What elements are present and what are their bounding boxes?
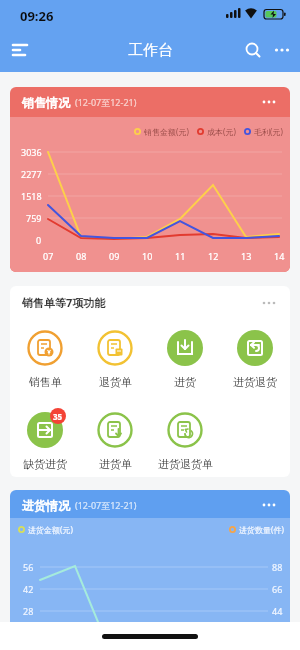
- button[interactable]: 进货: [150, 329, 220, 389]
- button[interactable]: 进货退货: [220, 329, 290, 389]
- staticText: 08: [76, 250, 87, 262]
- staticText: 成本(元): [207, 126, 236, 137]
- staticText: 66: [272, 583, 283, 595]
- staticText: 09: [109, 250, 120, 262]
- staticText: 10: [142, 250, 153, 262]
- staticText: 工作台: [128, 41, 173, 60]
- staticText: 14: [274, 250, 285, 262]
- staticText: 11: [175, 250, 186, 262]
- button[interactable]: 进货退货单: [150, 411, 220, 471]
- staticText: 进货数量(件): [239, 524, 284, 535]
- staticText: 12: [208, 250, 219, 262]
- staticText: 进货金额(元): [28, 524, 73, 535]
- button[interactable]: 销售单: [10, 329, 80, 389]
- staticText: 759: [26, 212, 42, 224]
- staticText: (12-07至12-21): [75, 96, 137, 108]
- staticText: 销售金额(元): [144, 126, 189, 137]
- button[interactable]: [244, 41, 262, 59]
- staticText: 56: [23, 561, 34, 573]
- button[interactable]: 35: [10, 411, 80, 471]
- button[interactable]: 退货单: [80, 329, 150, 389]
- button[interactable]: [262, 97, 278, 107]
- staticText: 退货单: [99, 375, 132, 389]
- button[interactable]: [262, 500, 278, 510]
- staticText: 42: [23, 583, 34, 595]
- button[interactable]: 进货单: [80, 411, 150, 471]
- staticText: 3036: [21, 146, 42, 158]
- staticText: 毛利(元): [254, 126, 283, 137]
- staticText: 进货退货单: [158, 457, 213, 471]
- staticText: 44: [272, 605, 283, 617]
- staticText: 销售单: [29, 375, 62, 389]
- staticText: 0: [36, 234, 42, 246]
- button[interactable]: [12, 43, 28, 57]
- staticText: 1518: [21, 190, 42, 202]
- staticText: 进货情况: [22, 498, 70, 513]
- button[interactable]: [262, 298, 278, 308]
- staticText: 销售单等7项功能: [22, 295, 106, 310]
- staticText: 28: [23, 605, 34, 617]
- staticText: 07: [43, 250, 54, 262]
- staticText: 2277: [21, 168, 42, 180]
- staticText: 进货: [174, 375, 196, 389]
- staticText: 13: [241, 250, 252, 262]
- staticText: (12-07至12-21): [75, 499, 137, 511]
- staticText: 88: [272, 561, 283, 573]
- staticText: 缺货进货: [23, 457, 67, 471]
- staticText: 进货退货: [233, 375, 277, 389]
- staticText: 销售情况: [22, 95, 70, 110]
- button[interactable]: [274, 41, 290, 59]
- staticText: 35: [53, 411, 63, 422]
- staticText: 进货单: [99, 457, 132, 471]
- staticText: 09:26: [20, 7, 54, 25]
